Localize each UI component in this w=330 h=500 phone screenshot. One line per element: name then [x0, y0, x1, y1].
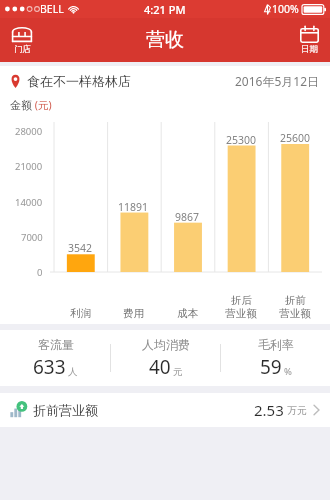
staticText: 费用	[123, 307, 144, 320]
button[interactable]: 门店	[8, 24, 36, 57]
staticText: 2.53	[254, 400, 284, 420]
staticText: 100%	[272, 2, 299, 16]
button[interactable]: 人均消费	[111, 330, 220, 386]
button[interactable]: 客流量	[0, 330, 110, 386]
staticText: 人	[68, 366, 78, 378]
staticText: 21000	[15, 160, 43, 173]
staticText: 633	[33, 354, 66, 380]
staticText: 营业额	[279, 307, 311, 320]
button[interactable]: 日期	[297, 24, 322, 57]
staticText: 28000	[15, 125, 43, 138]
staticText: 14000	[15, 196, 43, 209]
staticText: 折前	[285, 294, 306, 307]
button[interactable]: 折前营业额	[0, 393, 330, 427]
staticText: 9867	[175, 210, 200, 224]
staticText: 人均消费	[142, 337, 190, 352]
staticText: 25300	[226, 133, 257, 147]
staticText: BELL	[40, 2, 64, 16]
staticText: 元	[173, 366, 183, 378]
staticText: 营业额	[225, 307, 257, 320]
staticText: 59	[260, 354, 282, 380]
staticText: 营收	[146, 28, 184, 52]
staticText: 成本	[177, 307, 198, 320]
staticText: 7000	[21, 231, 43, 244]
staticText: 食在不一样格林店	[27, 73, 131, 89]
staticText: %	[284, 365, 292, 378]
staticText: 4:21 PM	[144, 2, 186, 17]
staticText: 客流量	[38, 337, 74, 352]
staticText: 3542	[68, 241, 93, 255]
staticText: 门店	[14, 44, 31, 55]
staticText: 折后	[231, 294, 252, 307]
staticText: 11891	[118, 200, 149, 214]
button[interactable]: 毛利率	[221, 330, 330, 386]
staticText: 利润	[70, 307, 91, 320]
staticText: 40	[149, 354, 171, 380]
staticText: 毛利率	[258, 337, 294, 352]
staticText: 2016年5月12日	[235, 73, 320, 89]
button[interactable]: 食在不一样格林店	[0, 66, 330, 96]
staticText: 金额	[10, 98, 32, 112]
staticText: 25600	[280, 131, 311, 145]
staticText: 折前营业额	[33, 402, 98, 418]
staticText: 0	[37, 266, 43, 279]
staticText: (元)	[32, 98, 52, 112]
staticText: 万元	[287, 404, 307, 417]
staticText: 日期	[301, 44, 318, 55]
